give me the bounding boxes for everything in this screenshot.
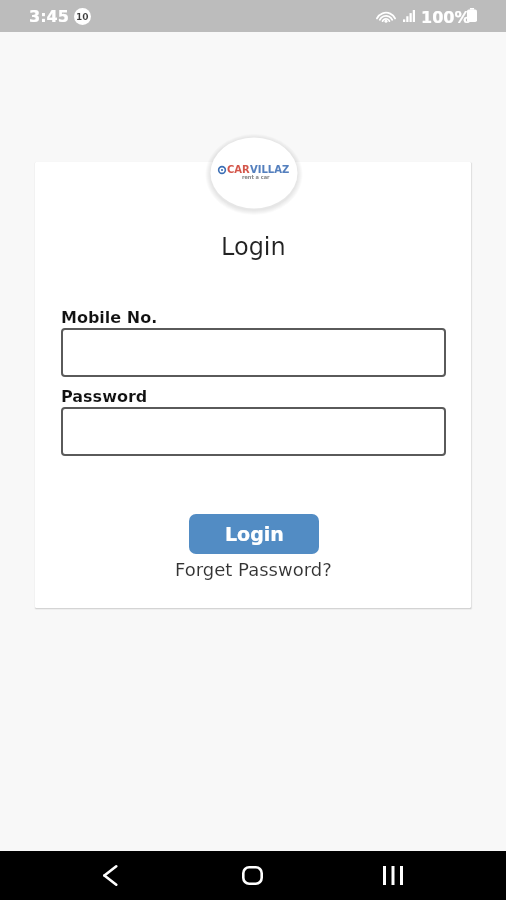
staticText: Mobile No. [61, 308, 158, 327]
button[interactable]: Back [80, 851, 140, 900]
button[interactable]: Home [222, 851, 282, 900]
button[interactable] [61, 407, 446, 456]
button[interactable] [61, 328, 446, 377]
staticText: rent a car [242, 174, 270, 180]
staticText: 3:45 [29, 7, 69, 26]
staticText: VILLAZ [250, 164, 290, 176]
button[interactable]: Recent apps [363, 851, 423, 900]
button[interactable]: Login [189, 514, 319, 554]
staticText: 100% [421, 8, 471, 27]
staticText: Login [221, 233, 286, 261]
staticText: Forget Password? [175, 559, 332, 580]
staticText: 10 [76, 12, 89, 22]
staticText: Password [61, 387, 148, 406]
staticText: Login [225, 523, 284, 545]
staticText: CAR [227, 164, 250, 176]
button[interactable]: Forget Password? [175, 559, 332, 580]
